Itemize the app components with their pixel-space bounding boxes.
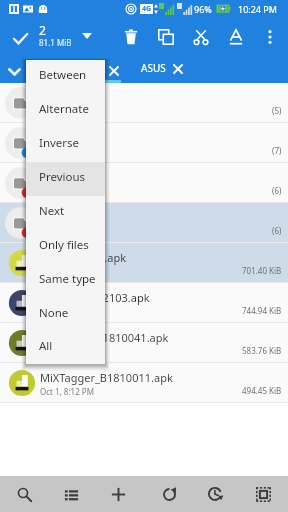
button[interactable]: More options	[253, 20, 287, 54]
staticText: (6)	[272, 185, 282, 196]
staticText: 81.1 MiB	[39, 37, 72, 48]
staticText: Only files	[39, 237, 89, 253]
staticText: Oct 1, 8:04 PM	[40, 106, 94, 117]
button[interactable]: Show tabs	[5, 62, 23, 80]
staticText: 2	[39, 22, 46, 38]
button[interactable]: MiXTagger_B1810011.apk	[0, 363, 288, 403]
staticText: 4G	[142, 4, 152, 14]
staticText: Previous	[39, 169, 86, 185]
staticText: ASUS	[141, 61, 166, 75]
staticText: 96%	[194, 3, 212, 15]
button[interactable]: Rename	[219, 20, 253, 54]
staticText: None	[39, 305, 69, 321]
button[interactable]: Refresh	[151, 476, 187, 512]
button[interactable]: Select all	[245, 476, 281, 512]
button[interactable]: All	[26, 332, 105, 364]
staticText: MiXTagger_B1810011.apk	[40, 370, 173, 385]
button[interactable]: Same type	[26, 264, 105, 298]
staticText: Oct 1, 8:12 PM	[40, 266, 94, 277]
button[interactable]: Only files	[26, 230, 105, 264]
staticText: Android	[40, 130, 82, 145]
button[interactable]: MiXlib_B1812103.apk	[0, 283, 288, 323]
staticText: backups	[40, 170, 83, 185]
staticText: bluetooth	[40, 210, 91, 225]
button[interactable]: ASUS	[141, 55, 190, 83]
button[interactable]: Search	[6, 476, 42, 512]
button[interactable]: Next	[26, 196, 105, 230]
button[interactable]: Cut	[184, 20, 218, 54]
button[interactable]: None	[26, 298, 105, 332]
staticText: Oct 1, 8:04 PM	[40, 146, 94, 157]
staticText: Inverse	[39, 135, 80, 151]
button[interactable]: Delete	[114, 20, 148, 54]
staticText: Same type	[39, 271, 96, 287]
button[interactable]: bluetooth	[0, 203, 288, 243]
button[interactable]: Copy	[149, 20, 183, 54]
staticText: Alternate	[39, 101, 89, 117]
staticText: Oct 1, 8:04 PM	[40, 186, 94, 197]
staticText: MiXplorer_B1810041.apk	[40, 330, 169, 345]
staticText: (6)	[272, 225, 282, 236]
button[interactable]: Add	[100, 476, 136, 512]
button[interactable]: Selection options	[75, 24, 99, 48]
button[interactable]: Between	[26, 60, 105, 94]
staticText: Oct 1, 8:12 PM	[40, 306, 94, 317]
button[interactable]: Alternate	[26, 94, 105, 128]
staticText: Oct 1, 8:12 PM	[40, 386, 94, 397]
button[interactable]: Previous	[26, 162, 105, 196]
staticText: Busybox_1.0.apk	[40, 250, 127, 265]
button[interactable]: Close tab	[104, 61, 124, 81]
staticText: Between	[39, 67, 87, 83]
staticText: 583.76 KiB	[242, 345, 282, 356]
button[interactable]: 2	[39, 22, 72, 49]
button[interactable]: Android	[0, 123, 288, 163]
staticText: (7)	[272, 145, 282, 156]
staticText: Next	[39, 203, 65, 219]
button[interactable]: backups	[0, 163, 288, 203]
button[interactable]: History	[197, 476, 233, 512]
button[interactable]: Alarms	[0, 83, 288, 123]
button[interactable]: Busybox_1.0.apk	[0, 243, 288, 283]
button[interactable]: Confirm selection	[4, 22, 36, 54]
button[interactable]: Inverse	[26, 128, 105, 162]
staticText: (5)	[272, 105, 282, 116]
button[interactable]: MiXplorer_B1810041.apk	[0, 323, 288, 363]
staticText: 494.45 KiB	[242, 385, 282, 396]
button[interactable]: View mode	[53, 476, 89, 512]
staticText: All	[39, 338, 53, 354]
staticText: Oct 1, 8:12 PM	[40, 346, 94, 357]
staticText: MiXlib_B1812103.apk	[40, 290, 150, 305]
staticText: 744.94 KiB	[242, 305, 282, 316]
staticText: 10:24 PM	[238, 3, 277, 15]
staticText: 701.40 KiB	[242, 265, 282, 276]
